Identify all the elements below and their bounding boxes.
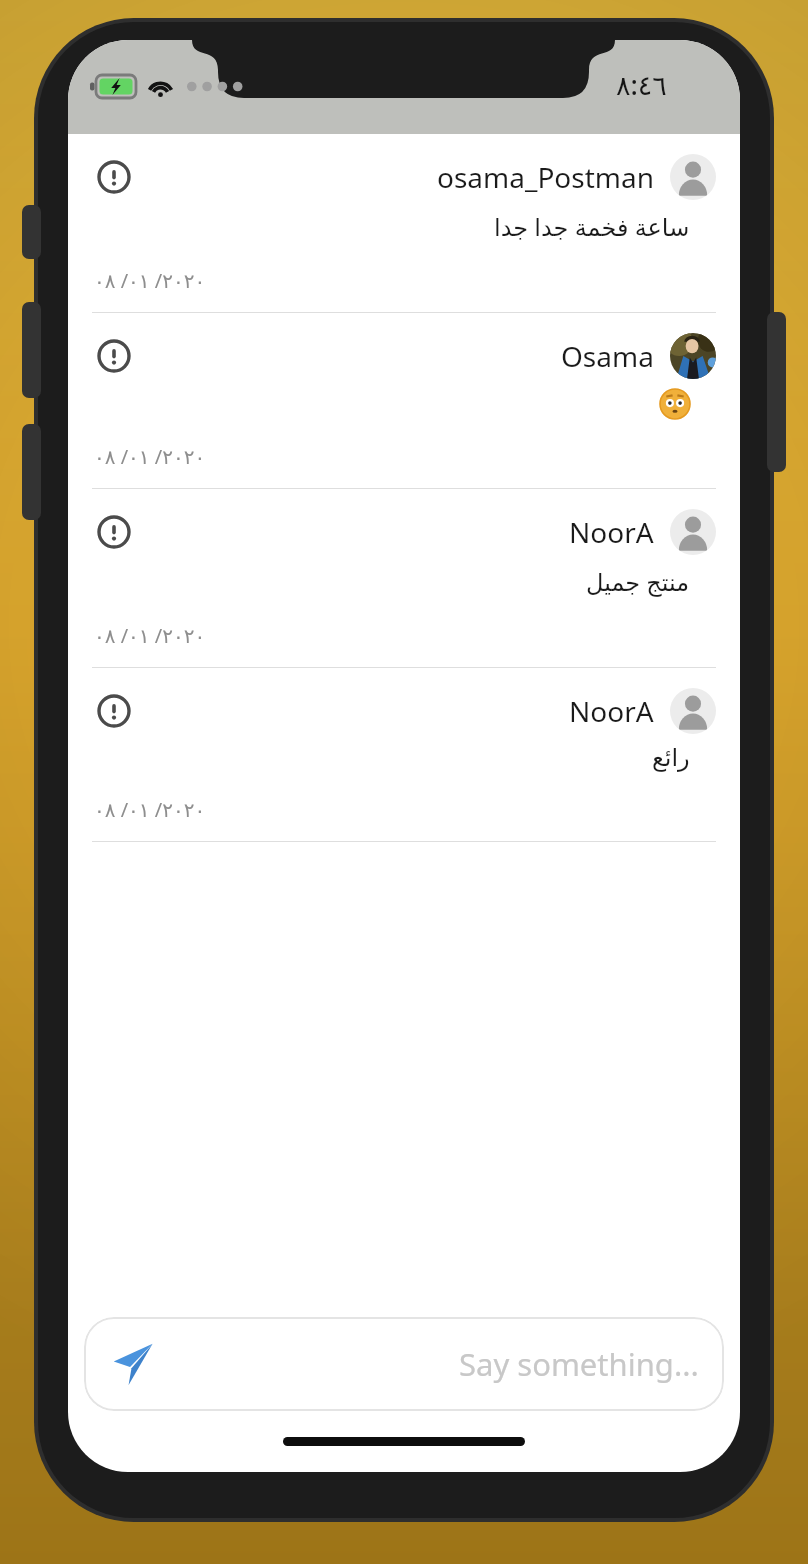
button[interactable]: Profile picture — [670, 154, 716, 200]
button[interactable]: Report comment — [92, 155, 136, 199]
staticText: ٨:٤٦ — [616, 66, 667, 103]
button[interactable]: Report comment — [92, 510, 136, 554]
staticText: osama_Postman — [437, 158, 654, 196]
staticText: NoorA — [569, 692, 654, 730]
staticText: ساعة فخمة جدا جدا — [494, 210, 690, 243]
button[interactable]: Report comment — [92, 334, 136, 378]
staticText: ٢٠٢٠/ ٠١/ ٠٨ — [94, 622, 206, 649]
button[interactable]: Profile picture — [670, 688, 716, 734]
staticText: ٢٠٢٠/ ٠١/ ٠٨ — [94, 443, 206, 470]
staticText: منتج جميل — [586, 565, 690, 598]
button[interactable]: Profile picture — [670, 333, 716, 379]
button[interactable]: Report comment — [68, 134, 740, 313]
button[interactable]: Send — [84, 1317, 724, 1411]
button[interactable]: Profile picture — [670, 509, 716, 555]
staticText: رائع — [652, 744, 690, 772]
button[interactable]: Send — [93, 1326, 169, 1402]
staticText: ٢٠٢٠/ ٠١/ ٠٨ — [94, 267, 206, 294]
button[interactable]: Report comment — [68, 313, 740, 489]
button[interactable]: Report comment — [68, 489, 740, 668]
button[interactable]: Report comment — [68, 668, 740, 842]
staticText: Osama — [561, 337, 654, 375]
staticText: ٢٠٢٠/ ٠١/ ٠٨ — [94, 796, 206, 823]
button[interactable]: Report comment — [92, 689, 136, 733]
staticText: NoorA — [569, 513, 654, 551]
staticText: Say something... — [459, 1343, 699, 1385]
